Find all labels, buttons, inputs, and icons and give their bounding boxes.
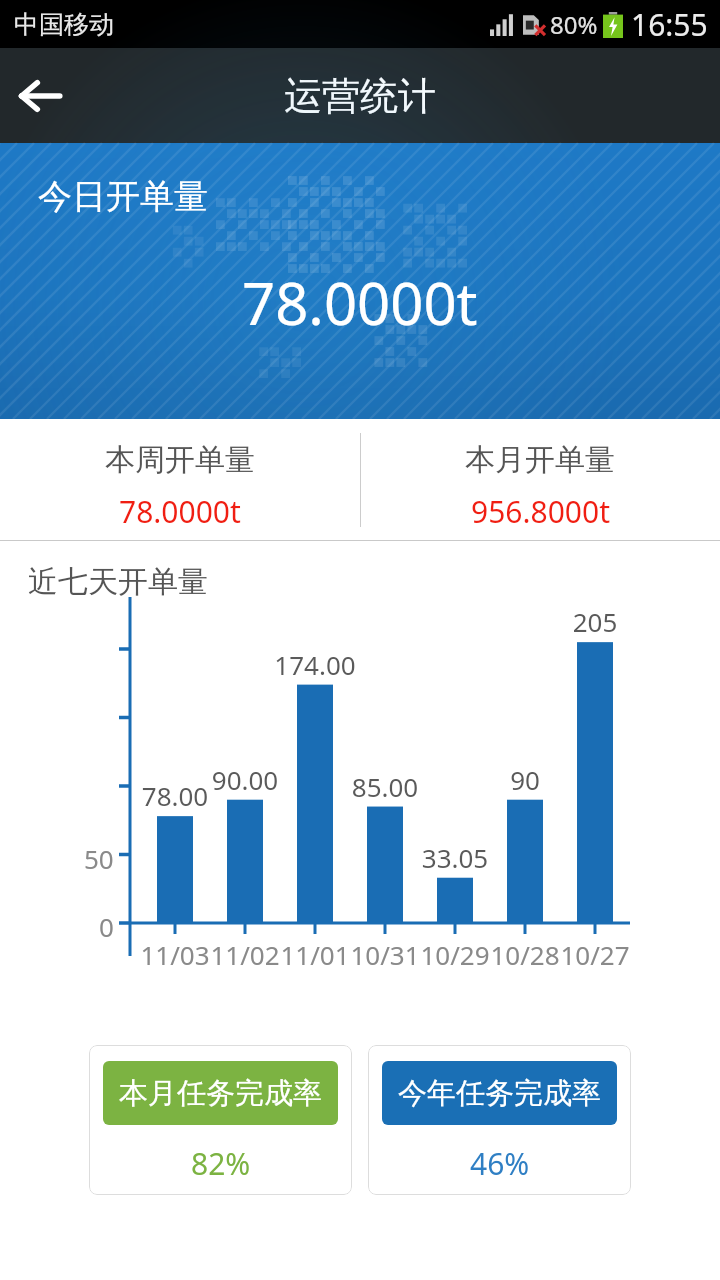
staticText: 16:55: [631, 4, 708, 45]
staticText: 174.00: [269, 647, 361, 682]
staticText: 本周开单量: [105, 441, 255, 479]
button[interactable]: 本月任务完成率: [89, 1045, 352, 1195]
staticText: 46%: [470, 1143, 530, 1184]
staticText: 78.0000t: [242, 263, 478, 342]
staticText: 90: [479, 762, 571, 797]
button[interactable]: 本周开单量: [0, 419, 360, 532]
button[interactable]: Back: [0, 48, 80, 143]
staticText: 78.00: [129, 778, 221, 813]
staticText: 本月任务完成率: [119, 1075, 322, 1112]
staticText: 205: [549, 604, 641, 639]
staticText: 中国移动: [14, 9, 114, 40]
staticText: 10/29: [409, 937, 501, 972]
staticText: 10/28: [479, 937, 571, 972]
staticText: 运营统计: [284, 72, 436, 120]
staticText: 956.8000t: [471, 491, 610, 532]
staticText: 82%: [191, 1143, 251, 1184]
staticText: 85.00: [339, 769, 431, 804]
button[interactable]: 今年任务完成率: [368, 1045, 631, 1195]
staticText: 10/31: [339, 937, 431, 972]
staticText: 今年任务完成率: [398, 1075, 601, 1112]
staticText: 90.00: [199, 762, 291, 797]
staticText: 近七天开单量: [28, 563, 208, 601]
staticText: 33.05: [409, 840, 501, 875]
staticText: 本月开单量: [465, 441, 615, 479]
staticText: 50: [84, 841, 114, 876]
staticText: 11/02: [199, 937, 291, 972]
staticText: 11/01: [269, 937, 361, 972]
staticText: 11/03: [129, 937, 221, 972]
staticText: 今日开单量: [38, 175, 208, 218]
staticText: 80%: [550, 8, 598, 41]
button[interactable]: 本月开单量: [360, 419, 720, 532]
staticText: 10/27: [549, 937, 641, 972]
staticText: 78.0000t: [119, 491, 241, 532]
staticText: 0: [99, 909, 114, 944]
